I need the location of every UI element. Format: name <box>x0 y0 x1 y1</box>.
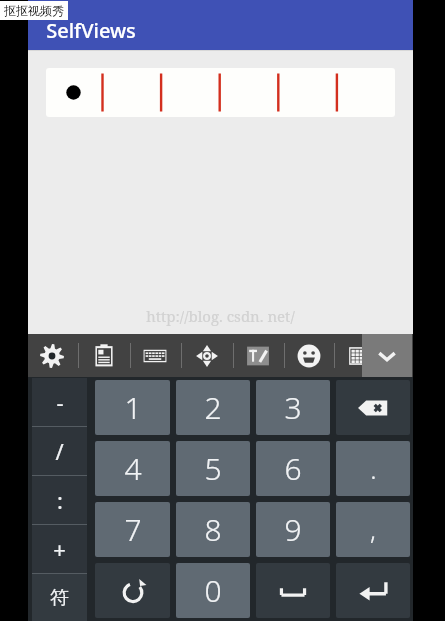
button[interactable]: Hide keyboard <box>362 334 412 377</box>
staticText: 3 <box>284 387 302 428</box>
staticText: . <box>370 451 377 486</box>
staticText: 2 <box>204 387 222 428</box>
staticText: 7 <box>124 509 142 550</box>
button[interactable]: 2 <box>176 380 250 435</box>
staticText: 6 <box>284 448 302 489</box>
button[interactable]: - <box>32 378 87 426</box>
button[interactable] <box>46 68 395 117</box>
button[interactable]: 9 <box>256 502 330 557</box>
staticText: 符 <box>50 586 69 610</box>
button[interactable]: Space <box>256 563 330 618</box>
button[interactable]: / <box>32 427 87 475</box>
button[interactable]: , <box>336 502 410 557</box>
staticText: 9 <box>284 509 302 550</box>
staticText: : <box>57 485 63 515</box>
staticText: 1 <box>124 387 142 428</box>
button[interactable]: Clipboard <box>80 334 128 377</box>
staticText: 8 <box>204 509 222 550</box>
staticText: - <box>56 387 64 417</box>
staticText: , <box>370 512 376 547</box>
staticText: 0 <box>204 570 222 611</box>
button[interactable]: 符 <box>32 574 87 621</box>
button[interactable]: Enter <box>336 563 410 618</box>
button[interactable]: 4 <box>95 441 170 496</box>
button[interactable]: 6 <box>256 441 330 496</box>
button[interactable]: 0 <box>176 563 250 618</box>
button[interactable]: Grid <box>335 334 383 377</box>
button[interactable]: Keyboard layout <box>131 334 179 377</box>
staticText: 5 <box>204 448 222 489</box>
staticText: 抠抠视频秀 <box>4 3 64 18</box>
staticText: SelfViews <box>46 17 136 44</box>
button[interactable]: Navigation pad <box>183 334 231 377</box>
button[interactable]: 7 <box>95 502 170 557</box>
button[interactable]: 3 <box>256 380 330 435</box>
button[interactable]: + <box>32 525 87 573</box>
button[interactable]: Settings <box>28 334 76 377</box>
button[interactable]: Emoji <box>285 334 333 377</box>
staticText: + <box>53 534 66 564</box>
button[interactable]: 5 <box>176 441 250 496</box>
button[interactable]: . <box>336 441 410 496</box>
button[interactable]: 1 <box>95 380 170 435</box>
staticText: http://blog. csdn. net/ <box>146 306 295 326</box>
button[interactable]: Undo <box>95 563 170 618</box>
button[interactable]: Text editing <box>234 334 282 377</box>
button[interactable]: : <box>32 476 87 524</box>
button[interactable]: 8 <box>176 502 250 557</box>
button[interactable]: Backspace <box>336 380 410 435</box>
staticText: 4 <box>124 448 142 489</box>
staticText: / <box>55 436 64 466</box>
